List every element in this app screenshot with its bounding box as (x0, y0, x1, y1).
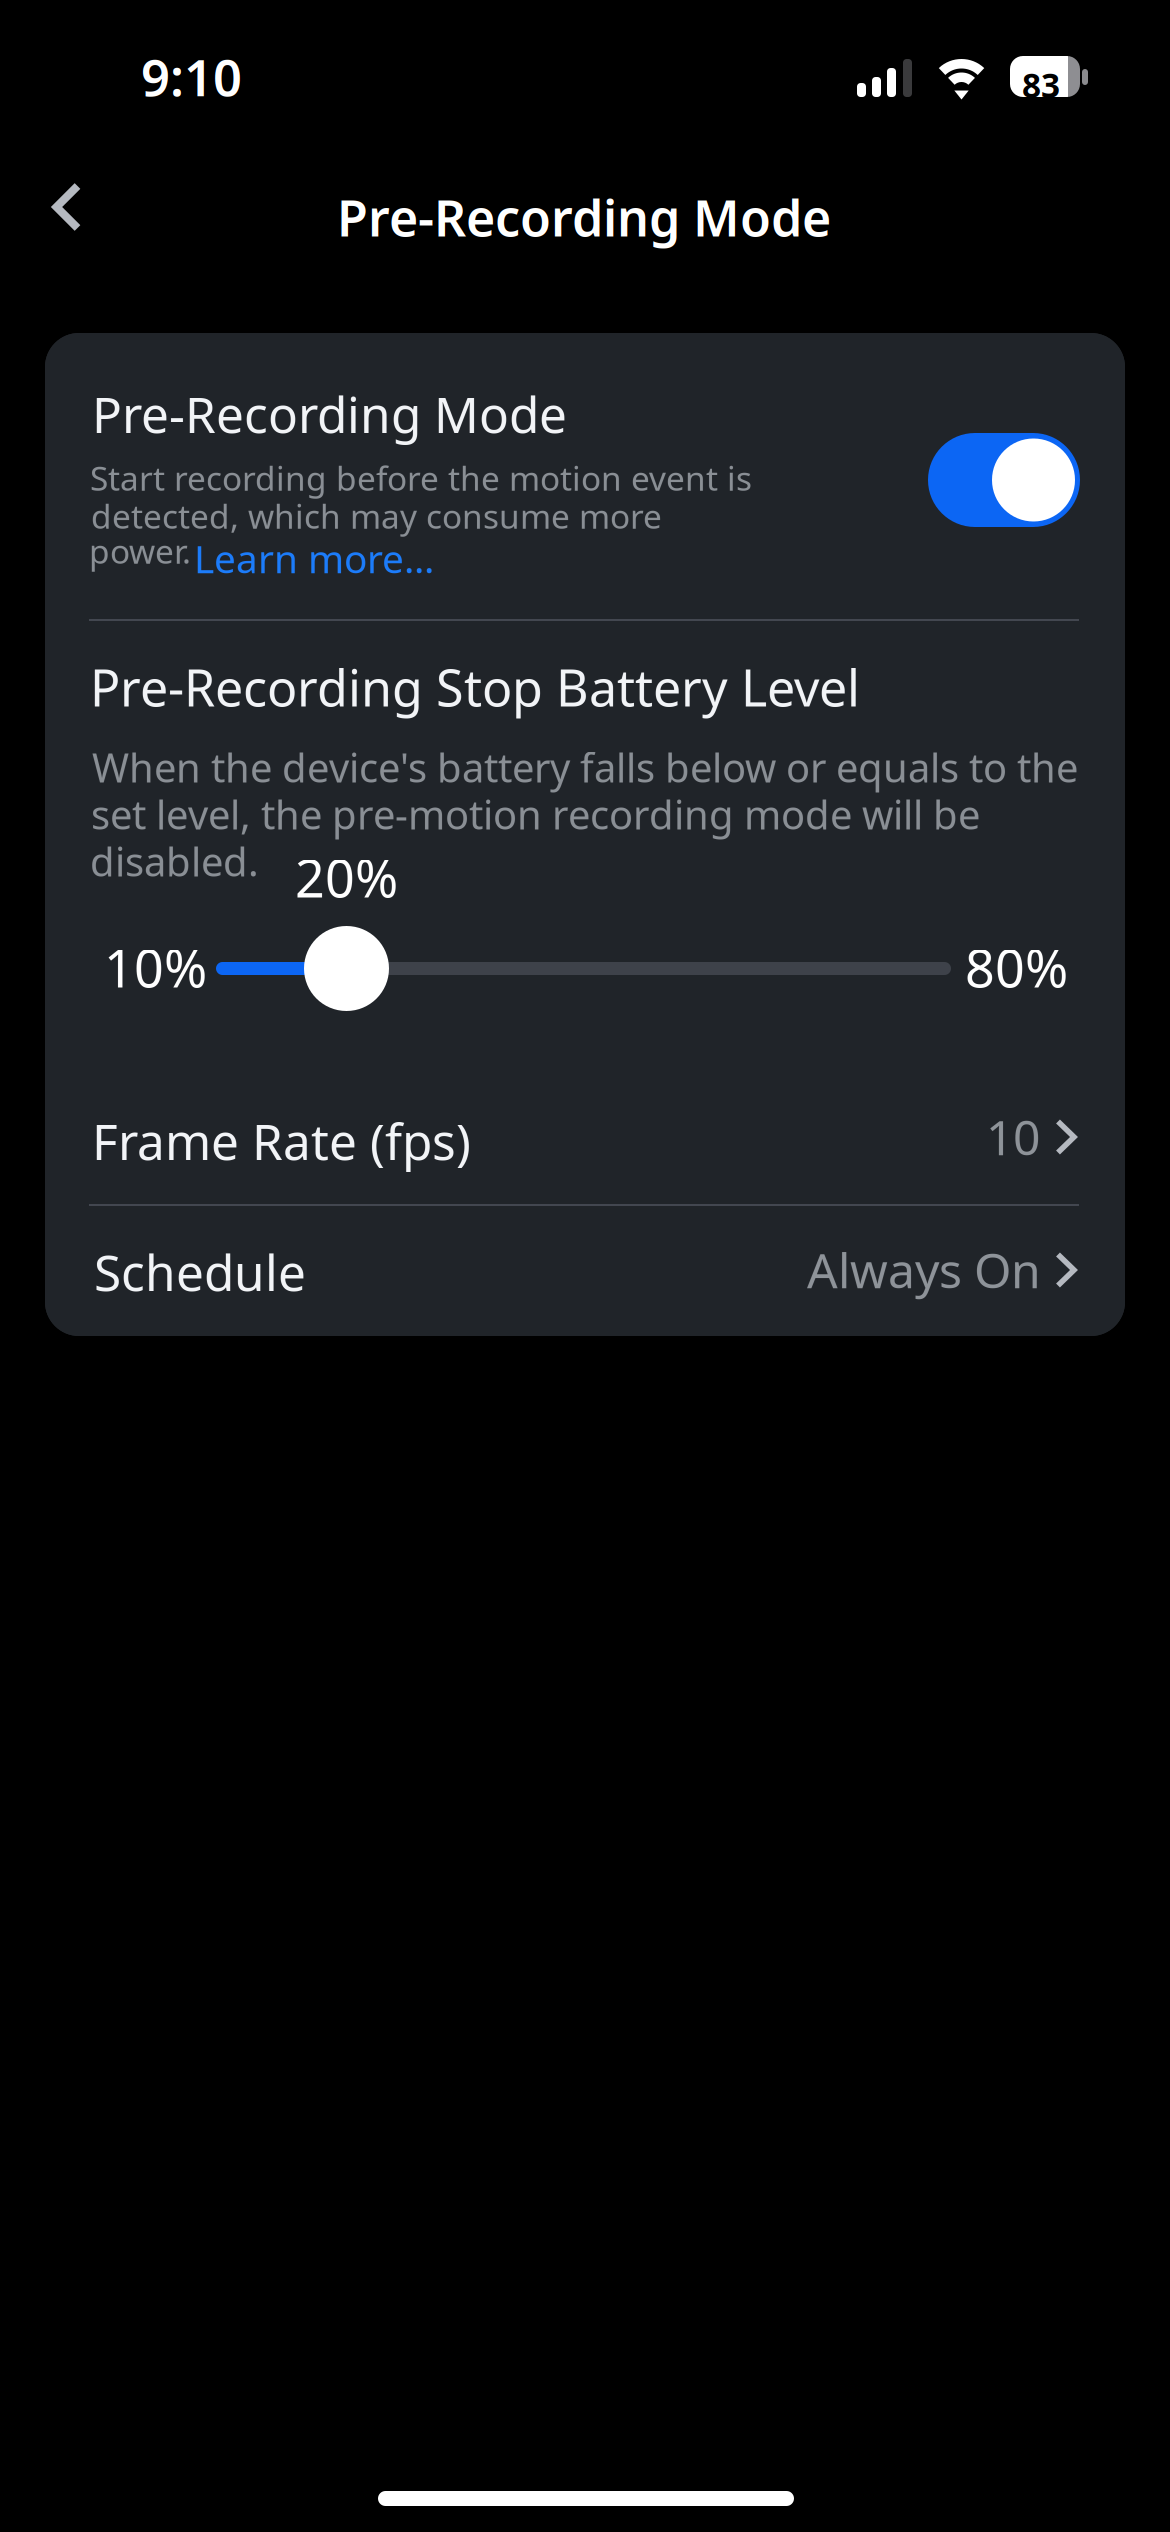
staticText: power. (89, 528, 191, 573)
staticText: 10 (986, 1104, 1040, 1169)
button[interactable]: Back (15, 155, 119, 259)
staticText: Pre-Recording Stop Battery Level (90, 653, 860, 721)
staticText: Schedule (94, 1238, 306, 1305)
button[interactable]: Frame Rate (fps) (45, 1073, 1125, 1204)
staticText: Start recording before the motion event … (90, 455, 752, 500)
staticText: 83 (1022, 62, 1060, 107)
staticText: disabled. (90, 834, 259, 888)
staticText: 20% (295, 842, 398, 913)
staticText: 9:10 (141, 42, 242, 111)
button[interactable]: Pre-Recording Mode (45, 333, 1125, 619)
staticText: set level, the pre-motion recording mode… (91, 787, 980, 841)
staticText: Pre-Recording Mode (92, 380, 567, 447)
staticText: Always On (807, 1237, 1041, 1302)
staticText: 80% (965, 932, 1068, 1003)
staticText: When the device's battery falls below or… (92, 740, 1078, 794)
staticText: detected, which may consume more (91, 493, 662, 538)
staticText: Frame Rate (fps) (92, 1107, 471, 1174)
button[interactable]: Learn more... (45, 333, 285, 386)
button[interactable]: Schedule (45, 1206, 1125, 1336)
staticText: Pre-Recording Mode (337, 183, 831, 251)
staticText: Learn more... (194, 532, 434, 585)
staticText: 10% (104, 932, 207, 1003)
